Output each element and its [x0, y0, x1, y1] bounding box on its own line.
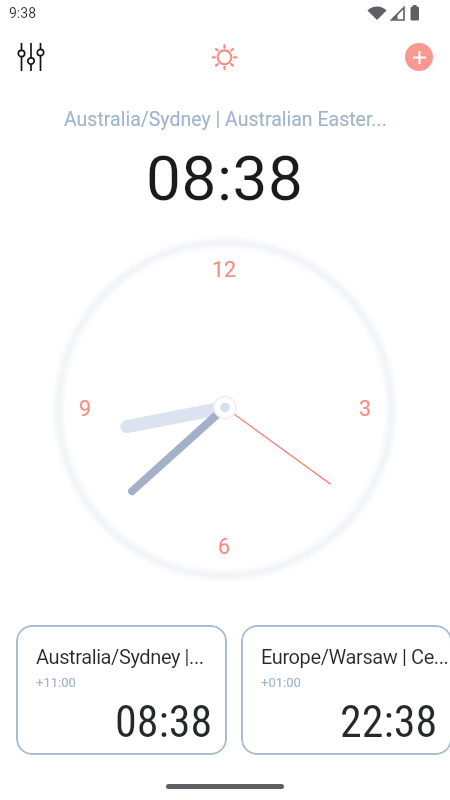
- staticText: Australia/Sydney | Australian Easter...: [64, 108, 387, 131]
- staticText: Europe/Warsaw | Ce...: [261, 645, 449, 668]
- staticText: 3: [359, 396, 372, 421]
- button[interactable]: [206, 38, 244, 76]
- button[interactable]: Europe/Warsaw | Ce...: [241, 625, 450, 755]
- staticText: +01:00: [261, 675, 301, 690]
- staticText: 08:38: [115, 696, 213, 748]
- staticText: 9:38: [9, 5, 36, 21]
- staticText: 12: [212, 257, 237, 282]
- staticText: +11:00: [36, 675, 76, 690]
- staticText: 9: [79, 396, 92, 421]
- button[interactable]: [12, 38, 50, 76]
- staticText: 08:38: [146, 142, 304, 215]
- button[interactable]: [405, 43, 433, 71]
- button[interactable]: Australia/Sydney |...: [16, 625, 227, 755]
- staticText: 6: [218, 534, 231, 559]
- staticText: 22:38: [340, 696, 438, 748]
- staticText: Australia/Sydney |...: [36, 645, 204, 668]
